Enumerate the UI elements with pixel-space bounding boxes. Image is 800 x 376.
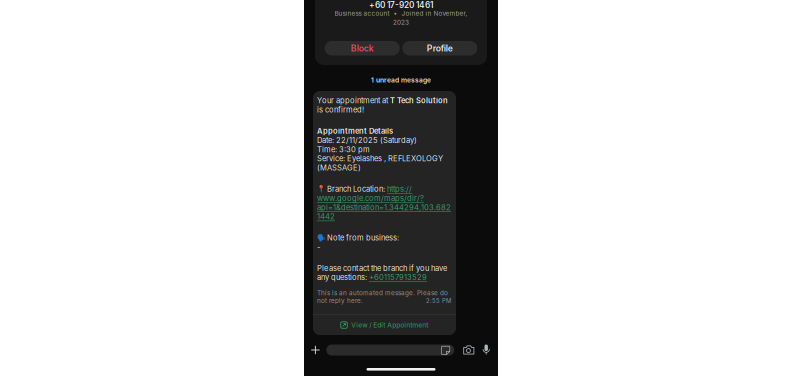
staticText: Time: 3:30 pm: [317, 145, 370, 154]
staticText: 2:55 PM: [426, 297, 451, 304]
staticText: +60 17-920 1461: [369, 0, 433, 10]
button[interactable]: Voice message: [480, 342, 492, 358]
staticText: 🗣️: [317, 234, 325, 242]
staticText: Business account • Joined in November,: [334, 10, 467, 17]
button[interactable]: View / Edit Appointment: [313, 315, 456, 335]
staticText: Service: Eyelashes , REFLEXOLOGY: [317, 154, 443, 163]
staticText: (MASSAGE): [317, 163, 361, 172]
staticText: Block: [351, 43, 374, 53]
staticText: This is an automated message. Please do: [317, 289, 448, 297]
button[interactable]: Block: [325, 41, 400, 55]
staticText: 1 unread message: [371, 76, 431, 84]
staticText: Profile: [427, 43, 453, 53]
button[interactable]: Attach: [307, 342, 323, 358]
button[interactable]: Camera: [460, 342, 476, 358]
staticText: View / Edit Appointment: [351, 321, 428, 329]
staticText: any questions:: [317, 273, 369, 282]
staticText: 📍: [317, 185, 325, 193]
staticText: Appointment Details: [317, 126, 393, 136]
staticText: Your appointment at: [317, 96, 390, 105]
staticText: www.google.com/maps/dir/?: [317, 194, 424, 203]
button[interactable]: Profile: [402, 41, 477, 55]
staticText: Date: 22/11/2025 (Saturday): [317, 136, 417, 145]
staticText: +601157913529: [369, 273, 427, 282]
staticText: not reply here.: [317, 297, 363, 304]
staticText: Branch Location:: [325, 184, 387, 194]
staticText: https://: [387, 184, 412, 194]
staticText: Note from business:: [325, 233, 399, 242]
staticText: 2023: [393, 19, 409, 26]
staticText: 1442: [317, 212, 335, 221]
staticText: is confirmed!: [317, 105, 364, 114]
staticText: api=1&destination=1.344294,103.682: [317, 203, 451, 212]
staticText: -: [317, 242, 320, 252]
staticText: T Tech Solution: [390, 96, 448, 105]
staticText: Please contact the branch if you have: [317, 264, 447, 273]
